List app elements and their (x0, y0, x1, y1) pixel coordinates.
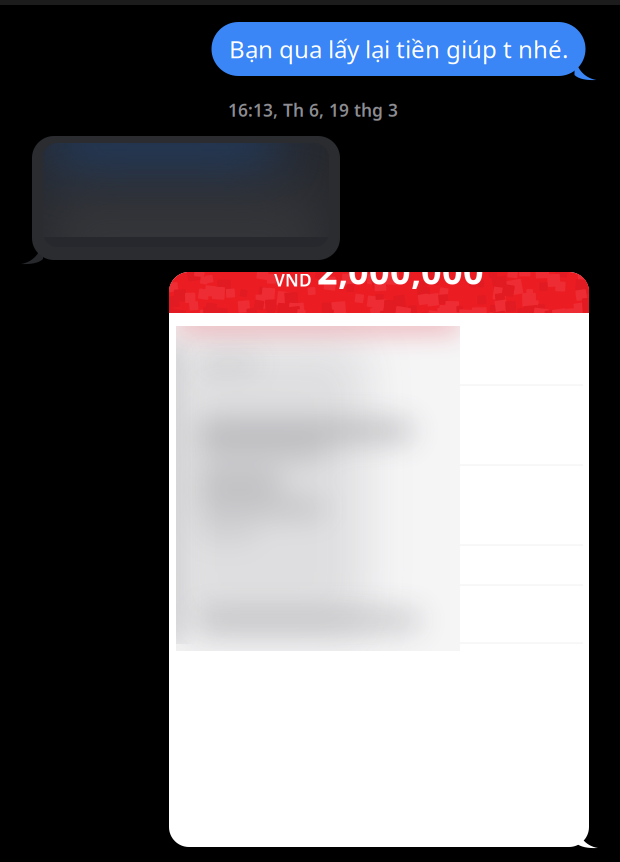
button[interactable]: VND (169, 272, 597, 850)
staticText: 2,000,000 (317, 247, 484, 294)
button[interactable]: Photo attachment (20, 132, 340, 260)
button[interactable]: Bạn qua lấy lại tiền giúp t nhé. (211, 18, 598, 76)
staticText: 16:13, Th 6, 19 thg 3 (228, 98, 398, 121)
staticText: VND (274, 268, 312, 291)
staticText: Bạn qua lấy lại tiền giúp t nhé. (229, 33, 568, 65)
